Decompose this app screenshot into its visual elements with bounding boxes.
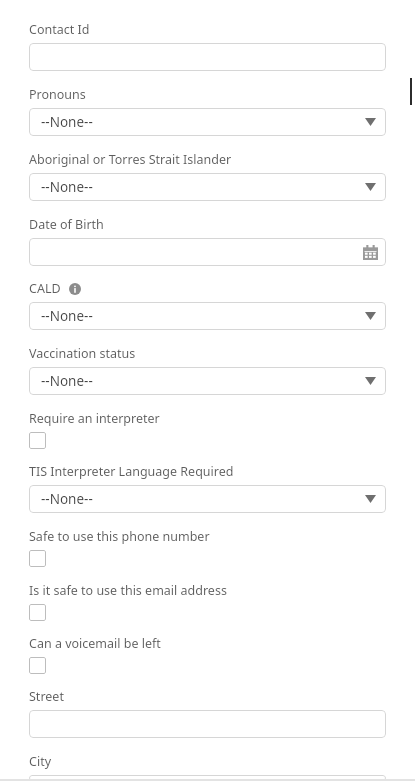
button[interactable]: City <box>29 775 386 781</box>
staticText: --None-- <box>41 372 93 390</box>
staticText: City <box>29 753 52 770</box>
staticText: --None-- <box>41 490 93 508</box>
button[interactable]: Date of Birth <box>29 238 386 266</box>
staticText: Require an interpreter <box>29 410 160 427</box>
staticText: Aboriginal or Torres Strait Islander <box>29 151 232 168</box>
button[interactable]: Pronouns <box>29 108 386 136</box>
button[interactable]: Street <box>29 710 386 738</box>
staticText: TIS Interpreter Language Required <box>29 463 234 480</box>
button[interactable]: CALD <box>29 302 386 330</box>
other: Open date picker <box>363 245 378 260</box>
staticText: --None-- <box>41 307 93 325</box>
staticText: --None-- <box>41 178 93 196</box>
staticText: Date of Birth <box>29 216 104 233</box>
staticText: Pronouns <box>29 86 86 103</box>
button[interactable]: Is it safe to use this email address <box>29 604 46 621</box>
button[interactable]: More information about CALD <box>69 283 81 295</box>
staticText: Is it safe to use this email address <box>29 582 227 599</box>
staticText: Street <box>29 688 64 705</box>
staticText: --None-- <box>41 113 93 131</box>
staticText: Vaccination status <box>29 345 136 362</box>
staticText: Contact Id <box>29 21 90 38</box>
staticText: Can a voicemail be left <box>29 635 161 652</box>
staticText: CALD <box>29 280 61 297</box>
button[interactable]: Contact Id <box>29 43 386 71</box>
button[interactable]: Vaccination status <box>29 367 386 395</box>
button[interactable]: Aboriginal or Torres Strait Islander <box>29 173 386 201</box>
button[interactable]: Require an interpreter <box>29 432 46 449</box>
staticText: Safe to use this phone number <box>29 528 210 545</box>
button[interactable]: Safe to use this phone number <box>29 550 46 567</box>
button[interactable]: TIS Interpreter Language Required <box>29 485 386 513</box>
button[interactable]: Can a voicemail be left <box>29 657 46 674</box>
